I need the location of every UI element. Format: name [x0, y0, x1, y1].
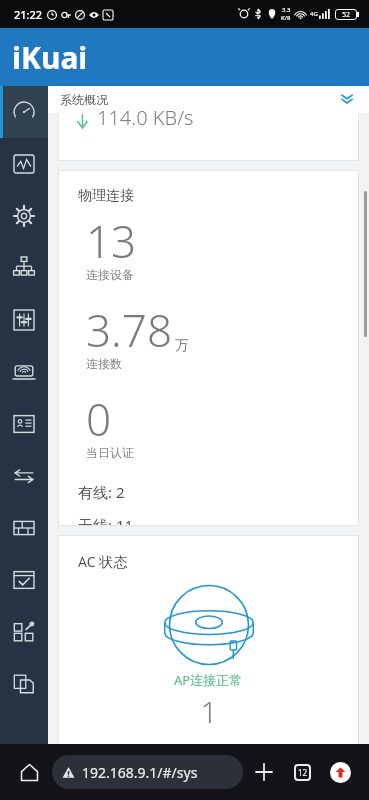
other: Collapse [339, 92, 355, 108]
button[interactable]: Flow control [0, 294, 48, 346]
button[interactable]: Network [0, 242, 48, 294]
button[interactable]: Wireless [0, 346, 48, 398]
button[interactable]: Monitor [0, 138, 48, 190]
button[interactable]: Settings [0, 190, 48, 242]
staticText: K/8 [281, 14, 291, 22]
staticText: 3.3 [282, 6, 291, 14]
staticText: 114.0 KB/s [97, 104, 194, 131]
button[interactable]: AC 状态 [58, 535, 359, 744]
staticText: 连接设备 [86, 267, 134, 282]
staticText: 12 [298, 767, 308, 778]
button[interactable]: 114.0 KB/s [58, 113, 359, 161]
button[interactable]: 系统概况 [48, 86, 369, 113]
staticText: 有线: 2 [78, 482, 125, 502]
staticText: 4G [310, 10, 318, 18]
staticText: 系统概况 [60, 92, 108, 107]
button[interactable]: Tabs [285, 755, 319, 789]
button[interactable]: Firewall [0, 502, 48, 554]
staticText: 3.78 [86, 300, 173, 360]
button[interactable]: 物理连接 [58, 170, 359, 526]
staticText: 连接数 [86, 356, 122, 371]
staticText: AP连接正常 [174, 671, 243, 689]
staticText: 13 [86, 211, 137, 271]
staticText: iKuai [12, 37, 88, 78]
staticText: 无线: 11 [78, 515, 134, 526]
staticText: 物理连接 [78, 187, 134, 205]
button[interactable]: Forwarding [0, 450, 48, 502]
button[interactable]: Tasks [0, 554, 48, 606]
button[interactable]: Accounts [0, 398, 48, 450]
staticText: 当日认证 [86, 445, 134, 460]
staticText: 0 [86, 389, 112, 449]
staticText: AC 状态 [78, 552, 128, 571]
button[interactable]: 192.168.9.1/#/sys [52, 755, 243, 789]
button[interactable]: Dashboard [0, 86, 48, 138]
staticText: 52 [342, 10, 351, 20]
staticText: 192.168.9.1/#/sys [82, 763, 198, 782]
button[interactable]: Logs [0, 658, 48, 710]
button[interactable]: Apps [0, 606, 48, 658]
button[interactable]: Upload [323, 755, 357, 789]
staticText: 1 [200, 691, 218, 732]
staticText: 万 [175, 337, 189, 355]
staticText: 21:22 [14, 7, 43, 22]
button[interactable]: New tab [247, 755, 281, 789]
button[interactable]: Home [12, 755, 46, 789]
